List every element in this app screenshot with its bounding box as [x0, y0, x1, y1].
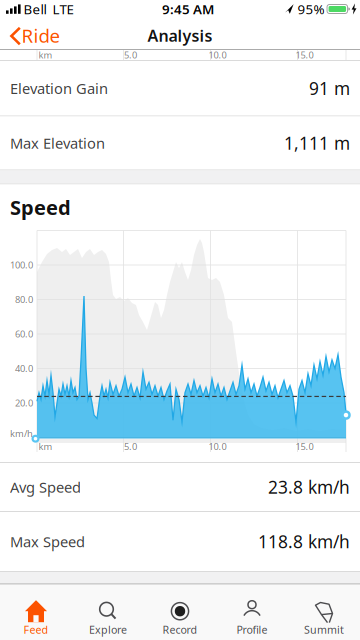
staticText: Record	[162, 623, 197, 637]
button[interactable]: Ride	[0, 20, 66, 49]
staticText: Feed	[23, 623, 48, 637]
staticText: 23.8 km/h	[268, 475, 350, 498]
staticText: km	[38, 49, 52, 61]
staticText: Explore	[89, 623, 127, 637]
staticText: 118.8 km/h	[258, 530, 350, 553]
staticText: Elevation Gain	[10, 78, 108, 98]
staticText: 100.0	[10, 259, 33, 271]
button[interactable]: Summit	[288, 584, 360, 640]
staticText: 80.0	[15, 293, 33, 306]
button[interactable]: Profile	[216, 584, 288, 640]
staticText: 40.0	[15, 362, 33, 375]
staticText: 1,111 m	[284, 131, 350, 154]
staticText: Ride	[21, 23, 60, 48]
staticText: 91 m	[309, 77, 350, 100]
staticText: Analysis	[147, 25, 212, 46]
staticText: 9:45 AM	[162, 0, 214, 18]
staticText: Avg Speed	[10, 477, 81, 497]
staticText: Speed	[10, 194, 71, 221]
staticText: 10.0	[208, 440, 226, 453]
staticText: 15.0	[295, 49, 313, 61]
staticText: 10.0	[208, 49, 226, 61]
staticText: Bell	[23, 0, 46, 18]
staticText: km	[38, 440, 52, 453]
button[interactable]: Feed	[0, 584, 72, 640]
button[interactable]: Record	[144, 584, 216, 640]
staticText: 20.0	[15, 397, 33, 409]
staticText: Max Speed	[10, 532, 85, 551]
staticText: Max Elevation	[10, 133, 105, 153]
staticText: km/h	[10, 427, 33, 440]
staticText: 95%	[297, 0, 324, 18]
staticText: LTE	[52, 0, 73, 18]
staticText: 5.0	[124, 49, 137, 61]
staticText: 60.0	[15, 328, 33, 340]
staticText: 15.0	[295, 440, 313, 453]
staticText: Profile	[236, 623, 267, 637]
button[interactable]: Explore	[72, 584, 144, 640]
staticText: Summit	[304, 623, 344, 637]
staticText: 5.0	[124, 440, 137, 453]
